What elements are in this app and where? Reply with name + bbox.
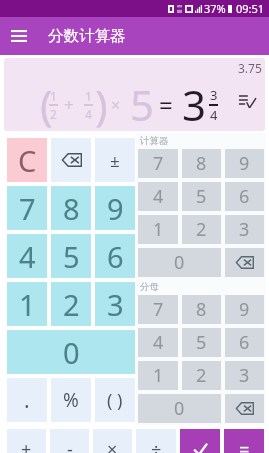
staticText: + xyxy=(64,93,74,116)
staticText: 5 xyxy=(196,184,207,209)
staticText: 1 xyxy=(50,88,57,104)
button[interactable]: ÷ xyxy=(136,429,176,453)
button[interactable]: 7 xyxy=(7,186,47,230)
staticText: 7 xyxy=(19,189,36,228)
staticText: 0 xyxy=(174,396,185,421)
button[interactable]: 8 xyxy=(51,186,91,230)
staticText: 0 xyxy=(174,250,185,275)
staticText: ) xyxy=(95,76,104,131)
staticText: = xyxy=(239,437,250,453)
button[interactable]: 1 xyxy=(138,215,178,244)
button[interactable]: 8 xyxy=(182,149,221,178)
button[interactable]: 5 xyxy=(182,182,221,211)
staticText: 3.75 xyxy=(238,60,262,76)
button[interactable]: 0 xyxy=(138,248,221,277)
staticText: 37% xyxy=(204,1,226,16)
button[interactable]: 9 xyxy=(95,186,135,230)
button[interactable]: 4 xyxy=(138,182,178,211)
staticText: 4 xyxy=(19,237,36,276)
staticText: 1 xyxy=(19,285,36,324)
button[interactable]: 4 xyxy=(138,328,178,357)
button[interactable]: 2 xyxy=(182,361,221,390)
staticText: 9 xyxy=(239,151,250,176)
staticText: 3 xyxy=(107,285,124,324)
button[interactable]: 9 xyxy=(225,295,264,324)
staticText: 09:51 xyxy=(236,1,265,16)
staticText: 计算器 xyxy=(140,135,169,147)
staticText: 5 xyxy=(196,330,207,355)
button[interactable]: History xyxy=(236,90,258,112)
button[interactable]: 5 xyxy=(51,234,91,278)
button[interactable]: Backspace xyxy=(225,248,264,277)
staticText: 9 xyxy=(239,297,250,322)
staticText: . xyxy=(24,386,30,415)
button[interactable]: 2 xyxy=(182,215,221,244)
staticText: 9 xyxy=(107,189,124,228)
button[interactable]: + xyxy=(7,429,46,453)
staticText: 2 xyxy=(196,217,207,242)
button[interactable]: C xyxy=(7,138,47,182)
staticText: 3 xyxy=(182,76,207,131)
button[interactable]: 3 xyxy=(225,361,264,390)
staticText: ( xyxy=(40,76,49,131)
button[interactable]: ( ) xyxy=(95,378,135,422)
staticText: ± xyxy=(110,149,120,172)
button[interactable]: 7 xyxy=(138,295,178,324)
staticText: 4 xyxy=(210,106,218,124)
button[interactable]: 6 xyxy=(225,328,264,357)
button[interactable]: Backspace xyxy=(225,394,264,423)
staticText: ( ) xyxy=(107,388,123,413)
button[interactable]: 6 xyxy=(95,234,135,278)
staticText: 4 xyxy=(85,106,92,122)
staticText: 6 xyxy=(239,184,250,209)
button[interactable]: = xyxy=(224,429,264,453)
staticText: 1 xyxy=(153,363,164,388)
button[interactable]: Backspace xyxy=(51,138,91,182)
button[interactable]: 0 xyxy=(138,394,221,423)
staticText: = xyxy=(159,88,173,121)
button[interactable]: 0 xyxy=(7,330,135,374)
button[interactable]: 7 xyxy=(138,149,178,178)
button[interactable]: 3 xyxy=(225,215,264,244)
staticText: 8 xyxy=(63,189,80,228)
staticText: 7 xyxy=(153,297,164,322)
staticText: - xyxy=(67,437,73,453)
staticText: C xyxy=(18,141,37,180)
staticText: 3 xyxy=(239,217,250,242)
button[interactable]: 1 xyxy=(7,282,47,326)
staticText: 5 xyxy=(130,76,155,131)
staticText: 2 xyxy=(63,285,80,324)
staticText: 分母 xyxy=(140,281,159,293)
staticText: 分数计算器 xyxy=(48,26,126,46)
button[interactable]: 5 xyxy=(182,328,221,357)
staticText: × xyxy=(107,437,118,453)
staticText: 8 xyxy=(196,151,207,176)
button[interactable]: 1 xyxy=(138,361,178,390)
staticText: 3 xyxy=(210,86,218,104)
staticText: 6 xyxy=(239,330,250,355)
button[interactable]: 9 xyxy=(225,149,264,178)
staticText: + xyxy=(21,437,32,453)
button[interactable]: - xyxy=(50,429,89,453)
staticText: 2 xyxy=(50,106,57,122)
staticText: ÷ xyxy=(151,437,162,453)
button[interactable]: 6 xyxy=(225,182,264,211)
staticText: 7 xyxy=(153,151,164,176)
button[interactable]: Menu xyxy=(0,17,37,55)
button[interactable]: 8 xyxy=(182,295,221,324)
staticText: 5 xyxy=(63,237,80,276)
button[interactable]: % xyxy=(51,378,91,422)
staticText: 2 xyxy=(196,363,207,388)
staticText: × xyxy=(111,94,121,116)
staticText: 0 xyxy=(63,333,80,372)
staticText: 1 xyxy=(85,88,92,104)
staticText: 3 xyxy=(239,363,250,388)
button[interactable]: . xyxy=(7,378,47,422)
button[interactable]: 2 xyxy=(51,282,91,326)
button[interactable]: × xyxy=(93,429,132,453)
button[interactable]: 4 xyxy=(7,234,47,278)
button[interactable]: Confirm xyxy=(180,429,220,453)
staticText: 4 xyxy=(153,184,164,209)
button[interactable]: ± xyxy=(95,138,135,182)
button[interactable]: 3 xyxy=(95,282,135,326)
